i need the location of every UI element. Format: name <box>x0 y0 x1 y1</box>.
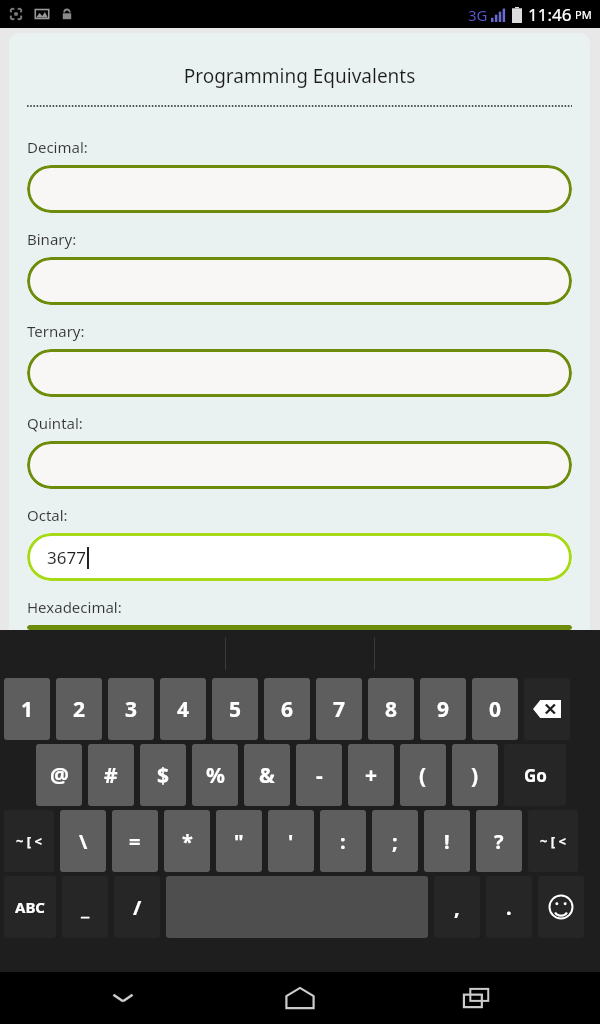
button[interactable] <box>27 625 572 630</box>
button[interactable]: ! <box>424 810 470 872</box>
staticText: 5 <box>229 695 242 724</box>
button[interactable]: _ <box>62 876 108 938</box>
button[interactable]: 2 <box>56 678 102 740</box>
staticText: 2 <box>73 695 86 724</box>
button[interactable]: 5 <box>212 678 258 740</box>
button[interactable]: ABC <box>4 876 56 938</box>
button[interactable]: 4 <box>160 678 206 740</box>
staticText: 8 <box>385 695 398 724</box>
staticText: 11:46 <box>528 3 572 26</box>
button[interactable]: Recent apps <box>423 972 533 1024</box>
button[interactable]: ~ [ < <box>4 810 54 872</box>
staticText: ~ [ < <box>16 832 42 850</box>
button[interactable]: Emoji <box>538 876 584 938</box>
staticText: - <box>316 761 323 790</box>
staticText: = <box>129 828 141 855</box>
staticText: Binary: <box>27 229 77 249</box>
button[interactable]: & <box>244 744 290 806</box>
button[interactable]: ; <box>372 810 418 872</box>
staticText: 3G <box>468 5 488 25</box>
button[interactable]: Backspace <box>524 678 570 740</box>
staticText: / <box>133 894 142 921</box>
staticText: * <box>182 828 193 855</box>
button[interactable]: , <box>434 876 480 938</box>
button[interactable]: + <box>348 744 394 806</box>
button[interactable]: @ <box>36 744 82 806</box>
button[interactable]: 8 <box>368 678 414 740</box>
staticText: # <box>104 761 118 790</box>
staticText: ? <box>494 828 504 855</box>
staticText: _ <box>81 894 90 921</box>
button[interactable]: 0 <box>472 678 518 740</box>
button[interactable]: - <box>296 744 342 806</box>
staticText: PM <box>575 7 592 22</box>
staticText: 0 <box>489 695 502 724</box>
staticText: , <box>454 894 460 921</box>
button[interactable]: % <box>192 744 238 806</box>
staticText: Hexadecimal: <box>27 597 122 617</box>
button[interactable]: \ <box>60 810 106 872</box>
button[interactable]: . <box>486 876 532 938</box>
button[interactable] <box>27 441 572 489</box>
staticText: 1 <box>21 695 34 724</box>
button[interactable]: 6 <box>264 678 310 740</box>
staticText: ) <box>471 761 479 790</box>
button[interactable] <box>27 257 572 305</box>
staticText: \ <box>79 828 88 855</box>
staticText: : <box>340 828 346 855</box>
staticText: Octal: <box>27 505 68 525</box>
button[interactable]: ( <box>400 744 446 806</box>
staticText: 7 <box>333 695 346 724</box>
staticText: $ <box>157 761 170 790</box>
staticText: 3677 <box>47 546 86 569</box>
button[interactable]: Go <box>504 744 566 806</box>
button[interactable]: ~ [ < <box>528 810 578 872</box>
staticText: Ternary: <box>27 321 85 341</box>
button[interactable]: 1 <box>4 678 50 740</box>
button[interactable]: ? <box>476 810 522 872</box>
button[interactable]: ) <box>452 744 498 806</box>
staticText: ' <box>288 828 294 855</box>
button[interactable]: = <box>112 810 158 872</box>
staticText: Decimal: <box>27 137 88 157</box>
button[interactable]: 7 <box>316 678 362 740</box>
button[interactable]: ' <box>268 810 314 872</box>
staticText: 4 <box>177 695 190 724</box>
staticText: 6 <box>281 695 294 724</box>
button[interactable]: " <box>216 810 262 872</box>
staticText: " <box>234 828 244 855</box>
staticText: 3 <box>125 695 138 724</box>
button[interactable]: 3677 <box>27 533 572 581</box>
button[interactable]: # <box>88 744 134 806</box>
staticText: @ <box>50 761 69 790</box>
staticText: Go <box>524 764 547 787</box>
button[interactable] <box>27 349 572 397</box>
button[interactable]: * <box>164 810 210 872</box>
staticText: + <box>365 761 378 790</box>
button[interactable]: / <box>114 876 160 938</box>
staticText: ! <box>444 828 450 855</box>
staticText: ; <box>392 828 398 855</box>
staticText: & <box>259 761 275 790</box>
staticText: 9 <box>437 695 450 724</box>
staticText: Programming Equivalents <box>9 63 590 89</box>
staticText: ~ [ < <box>540 832 566 850</box>
staticText: Quintal: <box>27 413 83 433</box>
button[interactable]: $ <box>140 744 186 806</box>
button[interactable]: Home <box>245 972 355 1024</box>
staticText: ( <box>419 761 427 790</box>
button[interactable]: 3 <box>108 678 154 740</box>
staticText: . <box>506 894 512 921</box>
staticText: ABC <box>15 897 45 917</box>
staticText: % <box>206 761 225 790</box>
button[interactable]: Hide keyboard <box>68 972 178 1024</box>
button[interactable] <box>27 165 572 213</box>
button[interactable]: : <box>320 810 366 872</box>
button[interactable]: 9 <box>420 678 466 740</box>
